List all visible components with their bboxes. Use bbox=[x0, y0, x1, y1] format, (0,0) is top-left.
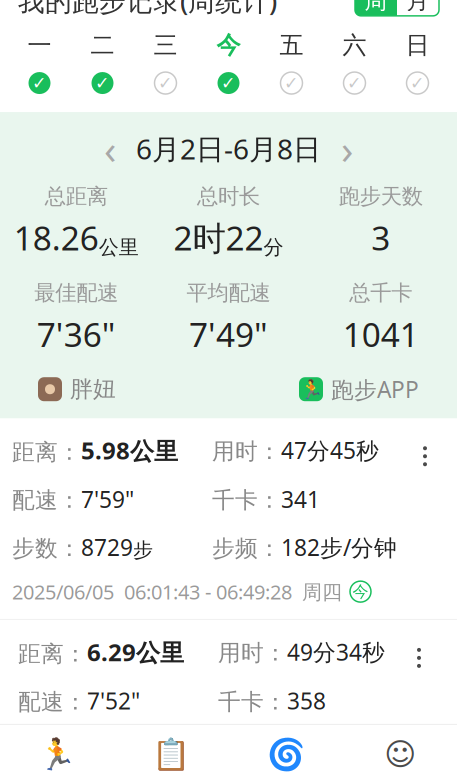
staticText: 公里 bbox=[99, 235, 139, 260]
staticText: 二 bbox=[90, 31, 114, 60]
staticText: 千卡： bbox=[212, 486, 281, 514]
staticText: 2025/06/05 06:01:43 - 06:49:28 周四 bbox=[12, 578, 342, 605]
staticText: ✓ bbox=[158, 73, 173, 93]
staticText: 千卡： bbox=[218, 688, 287, 716]
staticText: 今 bbox=[352, 582, 368, 601]
staticText: 月 bbox=[406, 0, 429, 15]
staticText: › bbox=[341, 122, 353, 175]
staticText: ✓ bbox=[221, 73, 236, 93]
staticText: 今 bbox=[216, 31, 240, 60]
staticText: 距离： bbox=[12, 438, 81, 466]
staticText: 18.26 bbox=[14, 215, 99, 260]
staticText: ✓ bbox=[284, 73, 299, 93]
button[interactable]: 📋 bbox=[114, 729, 228, 778]
staticText: 公里 bbox=[136, 638, 184, 668]
staticText: 配速： bbox=[12, 486, 81, 514]
staticText: ‹ bbox=[104, 122, 116, 175]
staticText: 7'36" bbox=[37, 312, 116, 356]
staticText: 配速： bbox=[18, 688, 87, 716]
staticText: ☺ bbox=[384, 737, 416, 772]
staticText: 1041 bbox=[343, 312, 419, 356]
button[interactable]: 距离： bbox=[0, 418, 457, 619]
staticText: 公里 bbox=[130, 437, 178, 466]
staticText: 6月2日-6月8日 bbox=[136, 130, 321, 167]
staticText: 用时： bbox=[212, 437, 281, 465]
button[interactable]: 🏃 bbox=[0, 729, 114, 778]
staticText: 我的跑步记录(周统计) bbox=[18, 0, 277, 19]
button[interactable]: 🏃 bbox=[299, 374, 419, 404]
staticText: 358 bbox=[287, 686, 326, 716]
button[interactable]: 月 bbox=[397, 0, 439, 16]
staticText: 🏃 bbox=[299, 379, 322, 400]
staticText: 三 bbox=[153, 31, 177, 60]
staticText: 距离： bbox=[18, 640, 87, 668]
staticText: ✓ bbox=[32, 73, 47, 93]
staticText: 47分45秒 bbox=[281, 435, 379, 465]
staticText: 胖妞 bbox=[70, 375, 116, 403]
staticText: 分 bbox=[263, 235, 283, 260]
staticText: 平均配速 bbox=[186, 280, 270, 306]
staticText: 341 bbox=[281, 484, 320, 514]
button[interactable]: More options bbox=[399, 636, 439, 680]
staticText: ✓ bbox=[347, 73, 362, 93]
staticText: 182步/分钟 bbox=[281, 532, 397, 562]
staticText: 📋 bbox=[152, 737, 190, 772]
staticText: 2时22 bbox=[173, 215, 263, 260]
staticText: 7'59" bbox=[81, 484, 134, 514]
button[interactable]: 距离： bbox=[0, 620, 457, 716]
staticText: 5.98 bbox=[81, 434, 130, 466]
button[interactable]: 周 bbox=[355, 0, 397, 16]
staticText: 🌀 bbox=[267, 737, 305, 772]
staticText: 周 bbox=[364, 0, 387, 15]
staticText: ✓ bbox=[410, 73, 425, 93]
staticText: 步频： bbox=[212, 534, 281, 562]
staticText: 3 bbox=[371, 215, 390, 260]
staticText: 总千卡 bbox=[349, 280, 412, 306]
staticText: 7'52" bbox=[87, 686, 140, 716]
staticText: 总距离 bbox=[45, 183, 108, 209]
button[interactable]: ☺ bbox=[343, 729, 457, 778]
button[interactable]: More options bbox=[405, 434, 445, 478]
button[interactable]: 🌀 bbox=[228, 729, 343, 778]
staticText: 用时： bbox=[218, 639, 287, 667]
staticText: 8729 bbox=[81, 532, 133, 562]
staticText: 跑步天数 bbox=[339, 183, 423, 209]
staticText: 五 bbox=[279, 31, 303, 60]
button[interactable]: 胖妞 bbox=[38, 375, 116, 403]
staticText: 总时长 bbox=[197, 183, 260, 209]
button[interactable]: Next week bbox=[327, 131, 367, 167]
staticText: 步数： bbox=[12, 534, 81, 562]
staticText: 49分34秒 bbox=[287, 637, 385, 667]
button[interactable]: Previous week bbox=[90, 131, 130, 167]
staticText: 日 bbox=[405, 31, 429, 60]
staticText: 跑步APP bbox=[331, 374, 419, 404]
staticText: 6.29 bbox=[87, 636, 136, 668]
staticText: ✓ bbox=[95, 73, 110, 93]
staticText: 🏃 bbox=[38, 737, 76, 772]
staticText: 最佳配速 bbox=[34, 280, 118, 306]
staticText: 六 bbox=[342, 31, 366, 60]
staticText: 7'49" bbox=[189, 312, 268, 356]
staticText: 步 bbox=[133, 538, 153, 562]
staticText: 一 bbox=[27, 31, 51, 60]
